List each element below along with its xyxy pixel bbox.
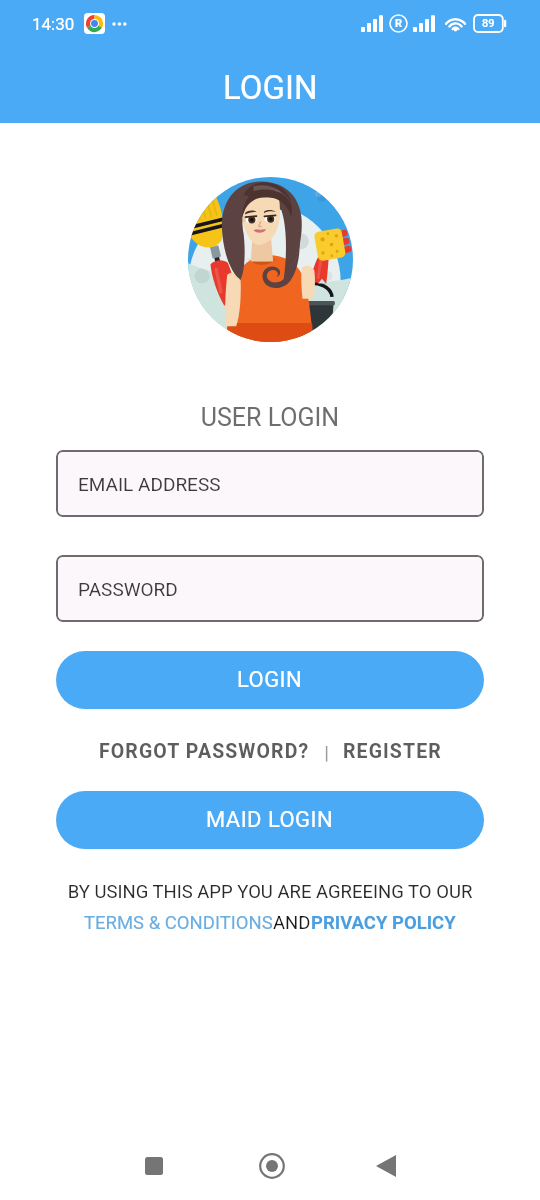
staticText: BY USING THIS APP YOU ARE AGREEING TO OU… [0,881,540,903]
staticText: REGISTER [343,740,442,763]
button[interactable]: LOGIN [56,651,484,709]
button[interactable]: PRIVACY POLICY [311,912,456,934]
staticText: PASSWORD [78,578,178,600]
staticText: MAID LOGIN [206,807,334,833]
button[interactable]: Recent apps [123,1135,185,1197]
button[interactable]: EMAIL ADDRESS [56,450,484,517]
staticText: LOGIN [237,667,303,693]
button[interactable]: Back [355,1135,417,1197]
staticText: TERMS & CONDITIONS [84,912,273,934]
staticText: | [310,741,343,763]
staticText: 89 [482,17,495,30]
button[interactable]: REGISTER [343,740,442,763]
staticText: AND [273,912,311,934]
button[interactable]: Home [241,1135,303,1197]
button[interactable]: MAID LOGIN [56,791,484,849]
button[interactable]: PASSWORD [56,555,484,622]
staticText: USER LOGIN [0,403,540,432]
staticText: EMAIL ADDRESS [78,473,221,495]
staticText: 14:30 [32,14,75,34]
staticText: FORGOT PASSWORD? [99,740,310,763]
staticText: LOGIN [223,68,318,107]
staticText: R [395,17,403,30]
button[interactable]: FORGOT PASSWORD? [99,740,310,763]
button[interactable]: TERMS & CONDITIONS [84,912,273,934]
staticText: PRIVACY POLICY [311,912,456,934]
